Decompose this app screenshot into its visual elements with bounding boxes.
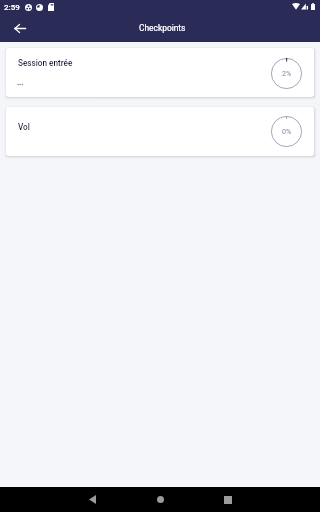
button[interactable]: Back bbox=[8, 16, 32, 40]
button[interactable]: Back bbox=[80, 487, 105, 512]
button[interactable]: Home bbox=[148, 487, 173, 512]
staticText: 0% bbox=[282, 128, 292, 136]
staticText: 2% bbox=[282, 70, 292, 78]
button[interactable]: Session entrée bbox=[6, 48, 314, 97]
button[interactable]: Vol bbox=[6, 107, 314, 156]
staticText: Checkpoints bbox=[139, 23, 186, 33]
staticText: Session entrée bbox=[18, 58, 73, 68]
staticText: Vol bbox=[18, 122, 30, 132]
staticText: 2:59 bbox=[4, 3, 20, 12]
button[interactable]: Recents bbox=[215, 487, 240, 512]
